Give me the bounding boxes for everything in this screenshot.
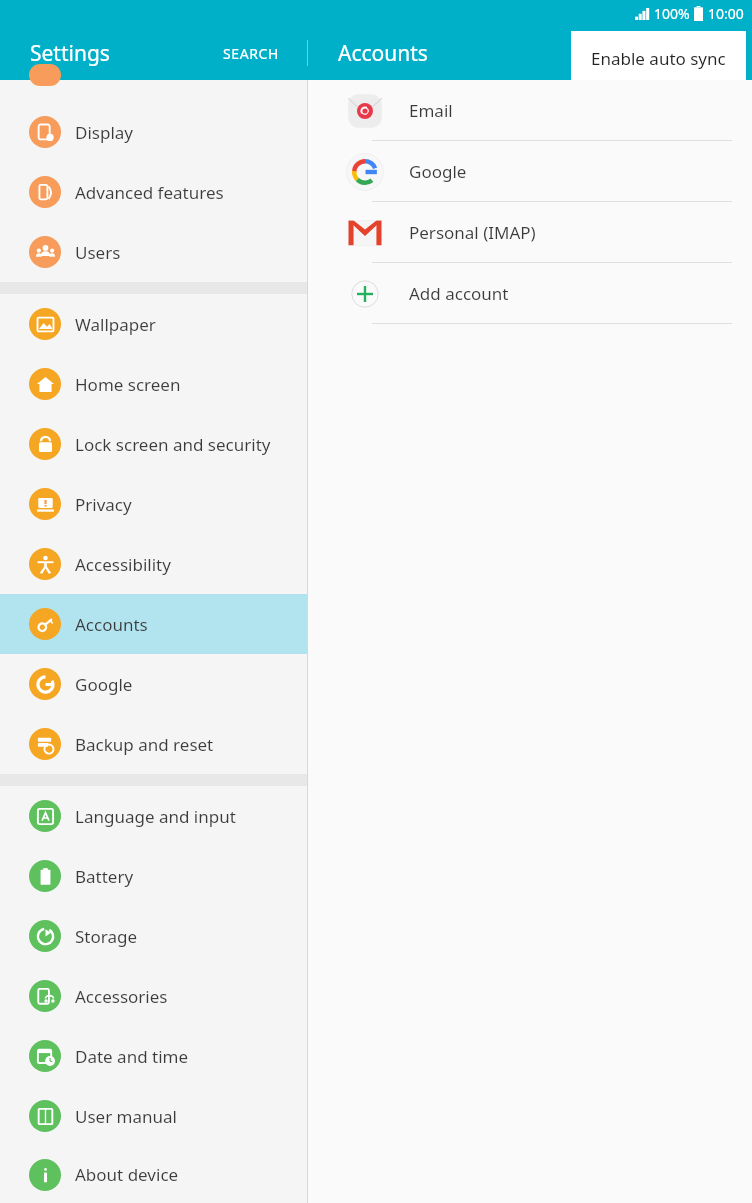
- staticText: Language and input: [75, 805, 236, 828]
- button[interactable]: Email: [308, 80, 752, 141]
- staticText: Email: [409, 99, 453, 122]
- staticText: About device: [75, 1163, 179, 1186]
- staticText: Add account: [409, 282, 509, 305]
- button[interactable]: Accounts: [0, 594, 307, 654]
- button[interactable]: Add account: [308, 263, 752, 324]
- button[interactable]: Display: [0, 102, 307, 162]
- staticText: User manual: [75, 1105, 177, 1128]
- staticText: Accessibility: [75, 553, 171, 576]
- button[interactable]: Storage: [0, 906, 307, 966]
- button[interactable]: Accessibility: [0, 534, 307, 594]
- button[interactable]: Language and input: [0, 786, 307, 846]
- staticText: Privacy: [75, 493, 132, 516]
- button[interactable]: SEARCH: [215, 36, 287, 71]
- staticText: Backup and reset: [75, 733, 214, 756]
- button[interactable]: Users: [0, 222, 307, 282]
- staticText: Accessories: [75, 985, 168, 1008]
- button[interactable]: Lock screen and security: [0, 414, 307, 474]
- staticText: Battery: [75, 865, 134, 888]
- button[interactable]: Wallpaper: [0, 294, 307, 354]
- staticText: Display: [75, 121, 133, 144]
- staticText: 10:00: [708, 4, 744, 23]
- staticText: Advanced features: [75, 181, 224, 204]
- button[interactable]: Google: [308, 141, 752, 202]
- staticText: Enable auto sync: [591, 47, 726, 70]
- staticText: SEARCH: [223, 44, 279, 63]
- button[interactable]: Google: [0, 654, 307, 714]
- button[interactable]: Advanced features: [0, 162, 307, 222]
- staticText: Home screen: [75, 373, 181, 396]
- button[interactable]: Enable auto sync: [571, 31, 746, 85]
- button[interactable]: Backup and reset: [0, 714, 307, 774]
- staticText: Accounts: [75, 613, 148, 636]
- staticText: 100%: [654, 4, 690, 23]
- staticText: Accounts: [338, 39, 428, 68]
- button[interactable]: About device: [0, 1146, 307, 1203]
- button[interactable]: Personal (IMAP): [308, 202, 752, 263]
- staticText: Storage: [75, 925, 138, 948]
- button[interactable]: Home screen: [0, 354, 307, 414]
- button[interactable]: User manual: [0, 1086, 307, 1146]
- staticText: Google: [75, 673, 133, 696]
- staticText: Lock screen and security: [75, 433, 271, 456]
- staticText: Settings: [30, 39, 110, 68]
- button[interactable]: Date and time: [0, 1026, 307, 1086]
- staticText: Date and time: [75, 1045, 189, 1068]
- button[interactable]: Battery: [0, 846, 307, 906]
- staticText: Wallpaper: [75, 313, 156, 336]
- button[interactable]: Privacy: [0, 474, 307, 534]
- button[interactable]: Settings: [28, 35, 112, 72]
- button[interactable]: Accessories: [0, 966, 307, 1026]
- staticText: Google: [409, 160, 467, 183]
- staticText: Users: [75, 241, 121, 264]
- staticText: Personal (IMAP): [409, 221, 536, 244]
